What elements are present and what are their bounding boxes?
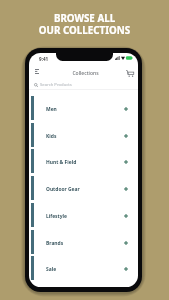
button[interactable]: Lifestyle xyxy=(29,203,138,227)
staticText: Brands xyxy=(46,240,64,247)
staticText: 9:41 xyxy=(39,56,49,62)
button[interactable]: Kids xyxy=(29,123,138,147)
staticText: Hunt & Field xyxy=(46,159,77,166)
staticText: Kids xyxy=(46,133,57,140)
staticText: Men xyxy=(46,106,57,113)
staticText: Collections xyxy=(31,70,138,77)
button[interactable]: Men xyxy=(29,96,138,120)
button[interactable]: Shopping cart xyxy=(124,68,135,78)
staticText: Search Products xyxy=(40,82,72,88)
button[interactable]: Search Products xyxy=(29,81,138,89)
staticText: BROWSE ALL OUR COLLECTIONS xyxy=(0,12,169,37)
button[interactable]: Sale xyxy=(29,256,138,280)
button[interactable]: Hunt & Field xyxy=(29,149,138,173)
staticText: Lifestyle xyxy=(46,213,67,220)
button[interactable]: Menu xyxy=(31,66,42,77)
staticText: Sale xyxy=(46,266,57,273)
button[interactable]: Brands xyxy=(29,230,138,254)
button[interactable]: Outdoor Gear xyxy=(29,176,138,200)
staticText: Outdoor Gear xyxy=(46,186,80,193)
